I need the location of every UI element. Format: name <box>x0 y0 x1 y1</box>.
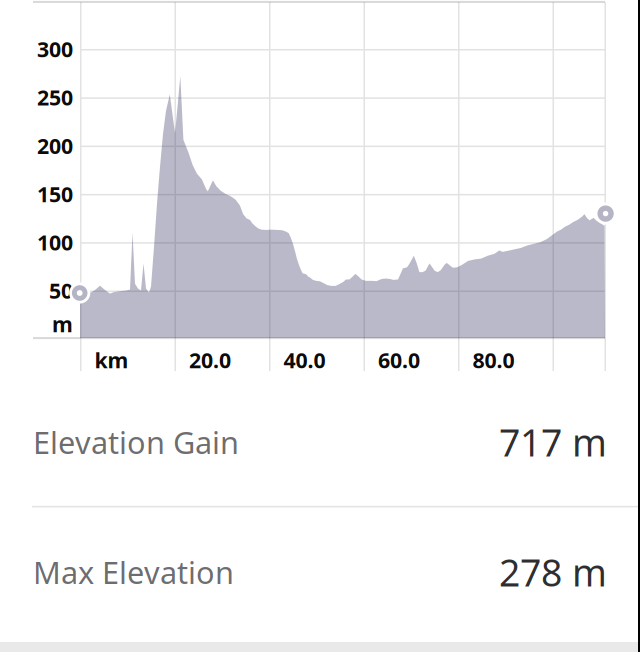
staticText: 50 <box>49 276 73 305</box>
staticText: m <box>52 310 73 338</box>
staticText: 100 <box>37 228 73 256</box>
staticText: Max Elevation <box>33 552 234 592</box>
staticText: 717 m <box>499 417 607 467</box>
staticText: 200 <box>37 131 73 160</box>
staticText: Elevation Gain <box>33 422 239 462</box>
staticText: 278 m <box>499 547 607 597</box>
staticText: 150 <box>37 180 73 208</box>
staticText: km <box>94 346 128 374</box>
button[interactable]: Max Elevation <box>0 507 640 637</box>
staticText: 60.0 <box>378 346 420 374</box>
staticText: 300 <box>37 35 73 63</box>
staticText: 250 <box>37 83 73 111</box>
button[interactable]: Elevation Gain <box>0 377 640 507</box>
staticText: 20.0 <box>189 346 231 374</box>
staticText: 80.0 <box>472 346 514 374</box>
staticText: 40.0 <box>283 346 325 374</box>
